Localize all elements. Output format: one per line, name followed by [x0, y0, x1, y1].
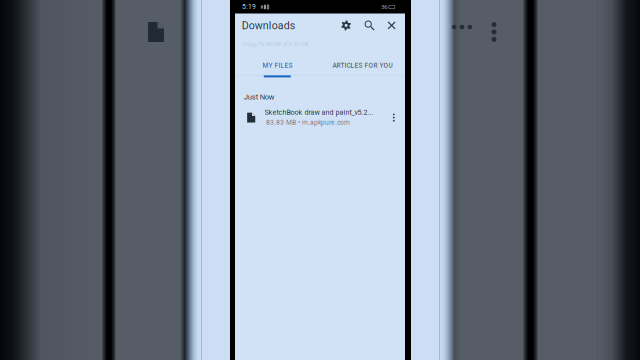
staticText: SketchBook draw and paint_v5.2...: [264, 108, 373, 116]
staticText: 5:19: [242, 3, 256, 11]
staticText: Downloads: [242, 19, 296, 32]
staticText: ARTICLES FOR YOU: [332, 62, 392, 69]
staticText: 36: [381, 4, 387, 10]
staticText: Just Now: [244, 92, 275, 101]
staticText: 83.83 MB • m.apkpure.com: [266, 119, 350, 126]
button[interactable]: MY FILES: [235, 54, 320, 76]
button[interactable]: ARTICLES FOR YOU: [320, 54, 405, 76]
button[interactable]: Settings: [335, 13, 357, 37]
staticText: Using 79.94 MB of 8.67 GB: [242, 41, 308, 48]
button[interactable]: Close: [381, 13, 403, 37]
button[interactable]: SketchBook draw and paint_v5.2...: [235, 104, 405, 134]
staticText: MY FILES: [262, 62, 292, 69]
button[interactable]: Search: [358, 13, 380, 37]
